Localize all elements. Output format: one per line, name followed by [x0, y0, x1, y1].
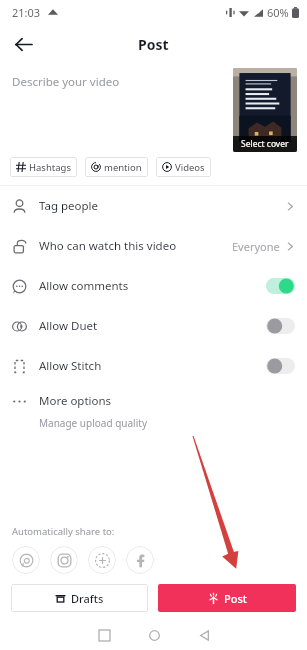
- staticText: 21:03: [12, 5, 41, 20]
- button[interactable]: Videos: [156, 157, 211, 177]
- button[interactable]: WhatsApp: [12, 546, 40, 574]
- button[interactable]: Who can watch this video: [0, 226, 307, 266]
- button[interactable]: Hashtags: [10, 157, 77, 177]
- button[interactable]: More options: [0, 386, 307, 436]
- button[interactable]: Back: [179, 620, 229, 650]
- staticText: Allow Stitch: [39, 358, 102, 374]
- staticText: Describe your video: [12, 74, 120, 90]
- button[interactable]: Drafts: [11, 584, 148, 612]
- button[interactable]: Back: [6, 27, 40, 61]
- staticText: Tag people: [39, 198, 99, 214]
- staticText: Allow Duet: [39, 318, 98, 334]
- button[interactable]: Facebook: [126, 546, 154, 574]
- staticText: More options: [39, 393, 112, 409]
- staticText: mention: [104, 161, 142, 174]
- button[interactable]: Home: [129, 620, 179, 650]
- staticText: Everyone: [232, 239, 280, 254]
- staticText: Videos: [175, 161, 205, 174]
- staticText: Automatically share to:: [12, 525, 115, 538]
- button[interactable]: Post: [158, 584, 296, 612]
- button[interactable]: mention: [85, 157, 148, 177]
- staticText: Post: [138, 35, 169, 54]
- staticText: 60%: [267, 5, 289, 20]
- staticText: Allow comments: [39, 278, 129, 294]
- staticText: Hashtags: [29, 161, 71, 174]
- button[interactable]: Tag people: [0, 186, 307, 226]
- button[interactable]: Allow Duet: [0, 306, 307, 346]
- button[interactable]: Recents: [79, 620, 129, 650]
- staticText: Post: [224, 591, 247, 606]
- button[interactable]: Select cover: [233, 68, 297, 152]
- staticText: Select cover: [241, 138, 289, 150]
- button[interactable]: Allow Stitch: [0, 346, 307, 386]
- button[interactable]: Story: [88, 546, 116, 574]
- staticText: Who can watch this video: [39, 238, 177, 254]
- staticText: Manage upload quality: [39, 416, 147, 430]
- button[interactable]: Instagram: [50, 546, 78, 574]
- staticText: Drafts: [71, 591, 104, 606]
- button[interactable]: Allow comments: [0, 266, 307, 306]
